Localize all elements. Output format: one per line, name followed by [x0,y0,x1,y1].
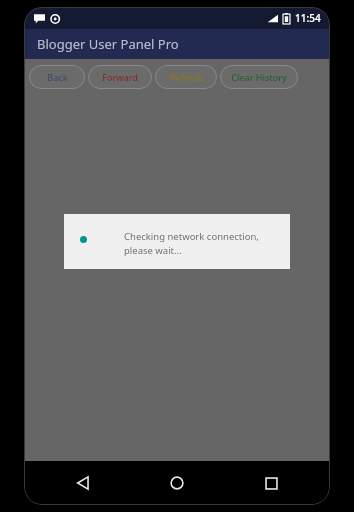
button[interactable]: Refresh [155,65,217,89]
button[interactable]: Forward [88,65,152,89]
staticText: Checking network connection, please wait… [124,230,272,257]
staticText: Clear History [231,71,287,83]
staticText: Blogger User Panel Pro [37,35,179,53]
staticText: Refresh [170,71,203,83]
button[interactable]: Home [142,463,212,503]
staticText: 11:54 [295,11,321,25]
button[interactable]: Clear History [220,65,298,89]
staticText: Back [47,71,68,83]
button[interactable]: Recent apps [236,463,306,503]
button[interactable]: Back [48,463,118,503]
staticText: Forward [102,71,138,83]
button[interactable]: Back [29,65,85,89]
